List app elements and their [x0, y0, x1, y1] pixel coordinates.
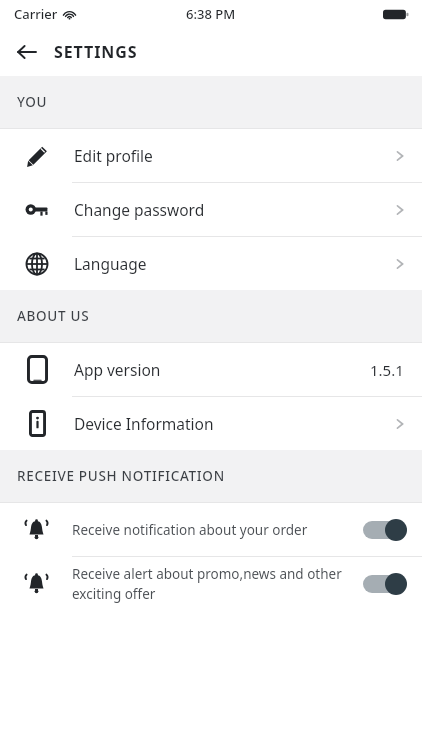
staticText: Language: [74, 253, 392, 274]
staticText: Edit profile: [74, 145, 392, 166]
button[interactable]: Change password: [0, 183, 422, 237]
staticText: YOU: [17, 93, 48, 111]
button[interactable]: Receive notification about your order: [0, 503, 422, 557]
staticText: RECEIVE PUSH NOTIFICATION: [17, 467, 225, 485]
button[interactable]: Toggle notification: [363, 519, 407, 541]
button[interactable]: Edit profile: [0, 129, 422, 183]
staticText: Carrier: [14, 5, 58, 23]
button[interactable]: Back: [10, 35, 44, 69]
staticText: Change password: [74, 199, 392, 220]
staticText: ABOUT US: [17, 307, 90, 325]
button[interactable]: Toggle notification: [363, 573, 407, 595]
staticText: Receive alert about promo,news and other…: [72, 565, 349, 603]
staticText: Receive notification about your order: [72, 521, 349, 539]
staticText: App version: [74, 359, 370, 380]
button[interactable]: Receive alert about promo,news and other…: [0, 557, 422, 610]
staticText: 6:38 PM: [186, 5, 236, 23]
staticText: 1.5.1: [370, 360, 404, 380]
staticText: Device Information: [74, 413, 392, 434]
button[interactable]: App version: [0, 343, 422, 397]
staticText: SETTINGS: [54, 41, 138, 63]
button[interactable]: Device Information: [0, 397, 422, 450]
button[interactable]: Language: [0, 237, 422, 290]
